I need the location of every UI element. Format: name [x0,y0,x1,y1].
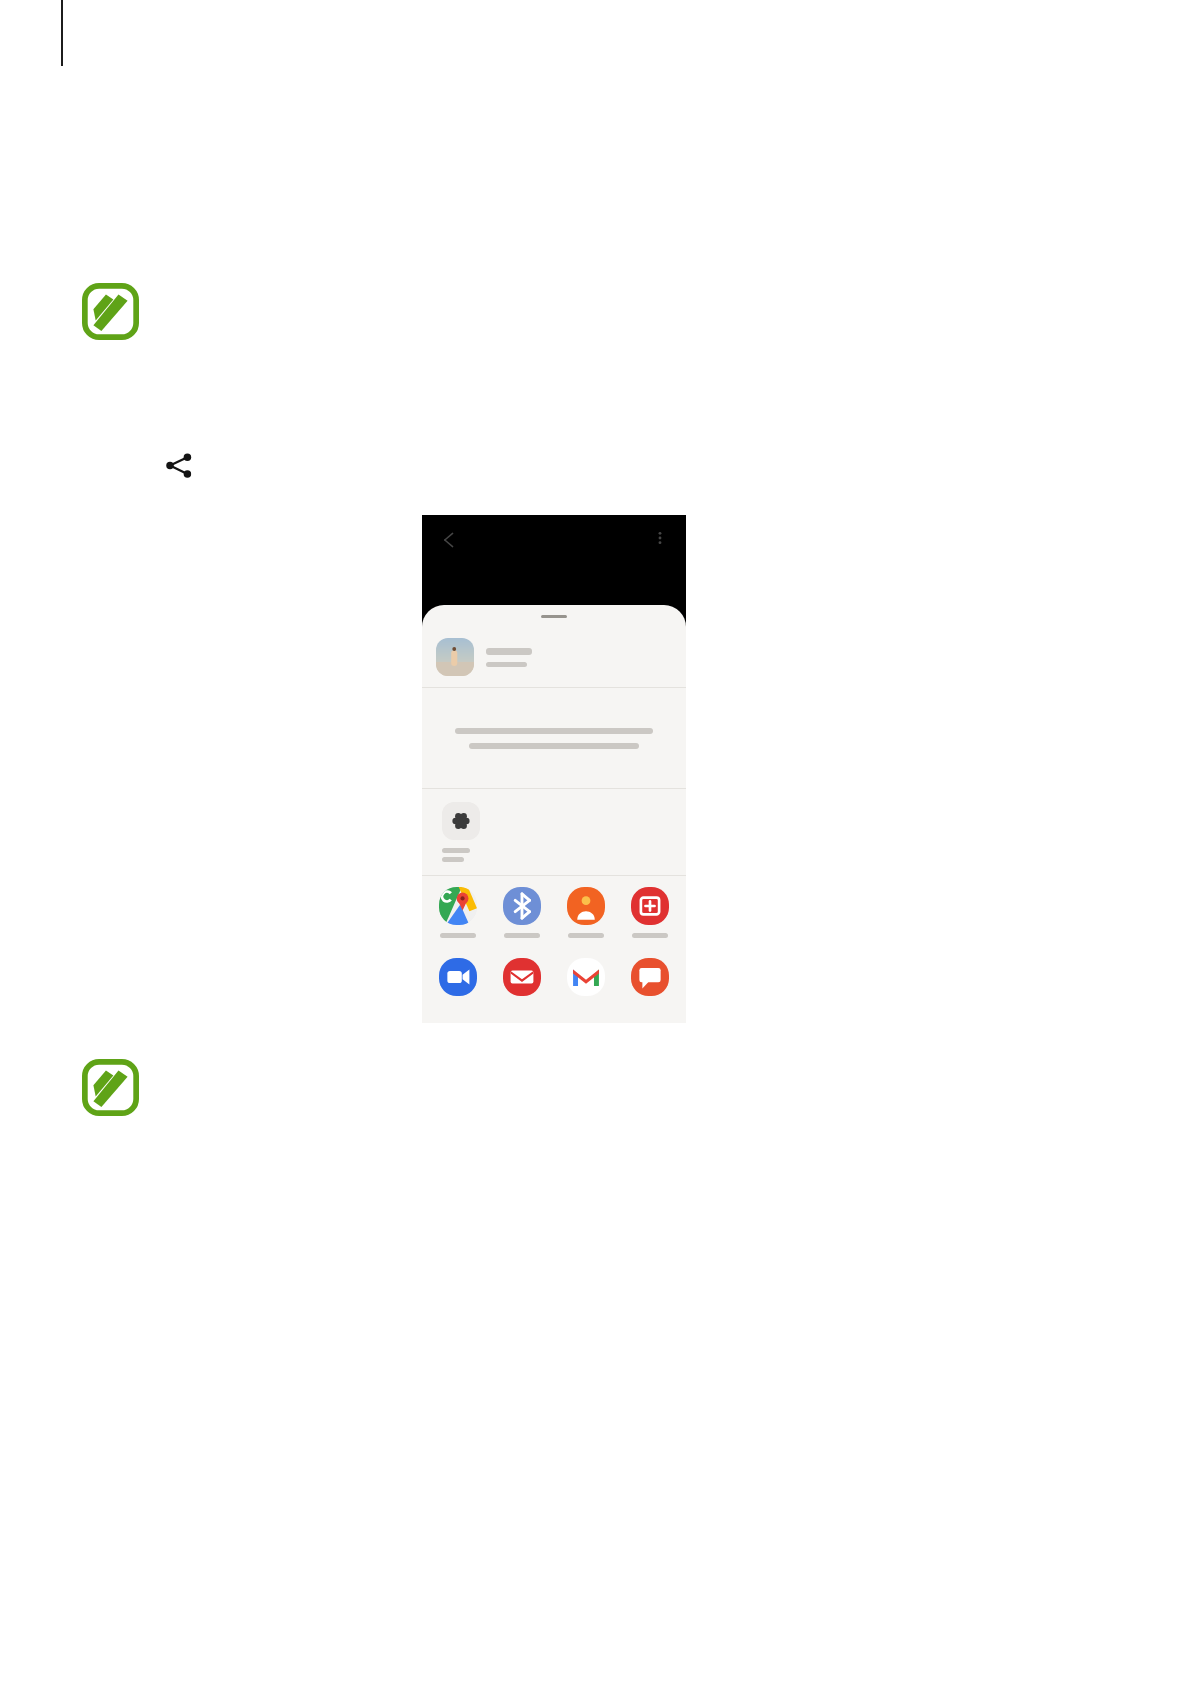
button[interactable] [422,627,686,687]
button[interactable]: Add [622,887,678,938]
button[interactable]: Contacts [558,887,614,938]
button[interactable]: Video [430,958,486,996]
button[interactable]: More options [647,525,673,551]
button[interactable]: Email [494,958,550,996]
button[interactable]: Back [434,525,464,555]
button[interactable]: Note [82,1059,139,1116]
button[interactable]: Bluetooth [494,887,550,938]
button[interactable]: Share [164,450,194,480]
button[interactable]: Messages [622,958,678,996]
button[interactable]: Gmail [558,958,614,996]
button[interactable]: Note [82,283,139,340]
button[interactable]: Maps [430,887,486,938]
button[interactable]: Quick Share [442,802,480,840]
